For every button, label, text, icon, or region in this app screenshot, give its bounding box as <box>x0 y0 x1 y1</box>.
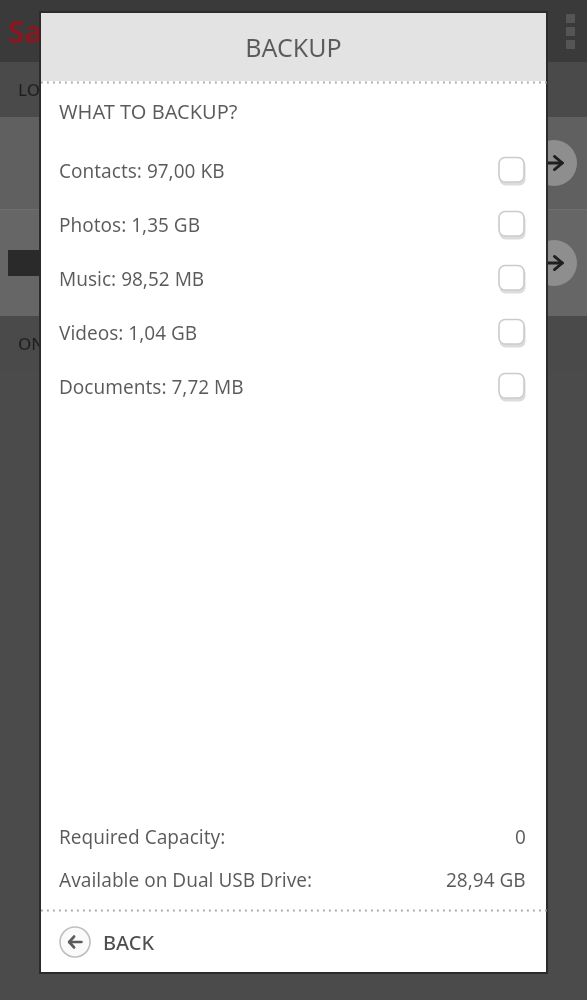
staticText: LOCAL <box>18 78 72 101</box>
staticText: Documents: 7,72 MB <box>59 374 244 400</box>
staticText: BACK <box>103 929 155 956</box>
button[interactable]: Open <box>531 140 577 186</box>
staticText: Contacts: 97,00 KB <box>59 158 225 184</box>
button[interactable]: Open <box>531 240 577 286</box>
staticText: Videos: 1,04 GB <box>59 320 198 346</box>
button[interactable]: Contacts: 97,00 KB <box>41 144 546 198</box>
staticText: 0 <box>515 824 526 850</box>
button[interactable]: Documents: 7,72 MB <box>41 360 546 414</box>
staticText: Music: 98,52 MB <box>59 266 205 292</box>
staticText: Photos: 1,35 GB <box>59 212 201 238</box>
staticText: Available on Dual USB Drive: <box>59 867 313 893</box>
staticText: 28,94 GB <box>446 867 526 893</box>
button[interactable]: Music: 98,52 MB <box>41 252 546 306</box>
staticText: ONLINE <box>18 332 83 355</box>
button[interactable]: Videos: 1,04 GB <box>41 306 546 360</box>
button[interactable]: BACK <box>41 912 546 972</box>
staticText: Sa <box>8 11 43 52</box>
staticText: Required Capacity: <box>59 824 226 850</box>
staticText: BACKUP <box>245 30 342 64</box>
button[interactable]: Photos: 1,35 GB <box>41 198 546 252</box>
staticText: WHAT TO BACKUP? <box>59 98 238 125</box>
